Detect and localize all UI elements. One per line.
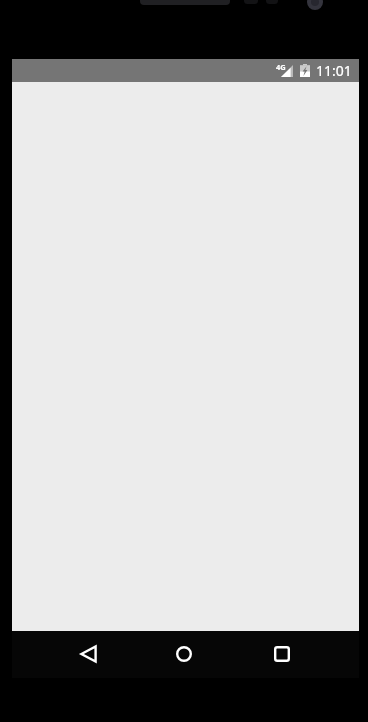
button[interactable]: Back (68, 634, 108, 674)
staticText: 4G (276, 62, 286, 72)
staticText: 11:01 (316, 61, 352, 80)
button[interactable]: Recent apps (262, 634, 302, 674)
button[interactable]: Home (164, 634, 204, 674)
